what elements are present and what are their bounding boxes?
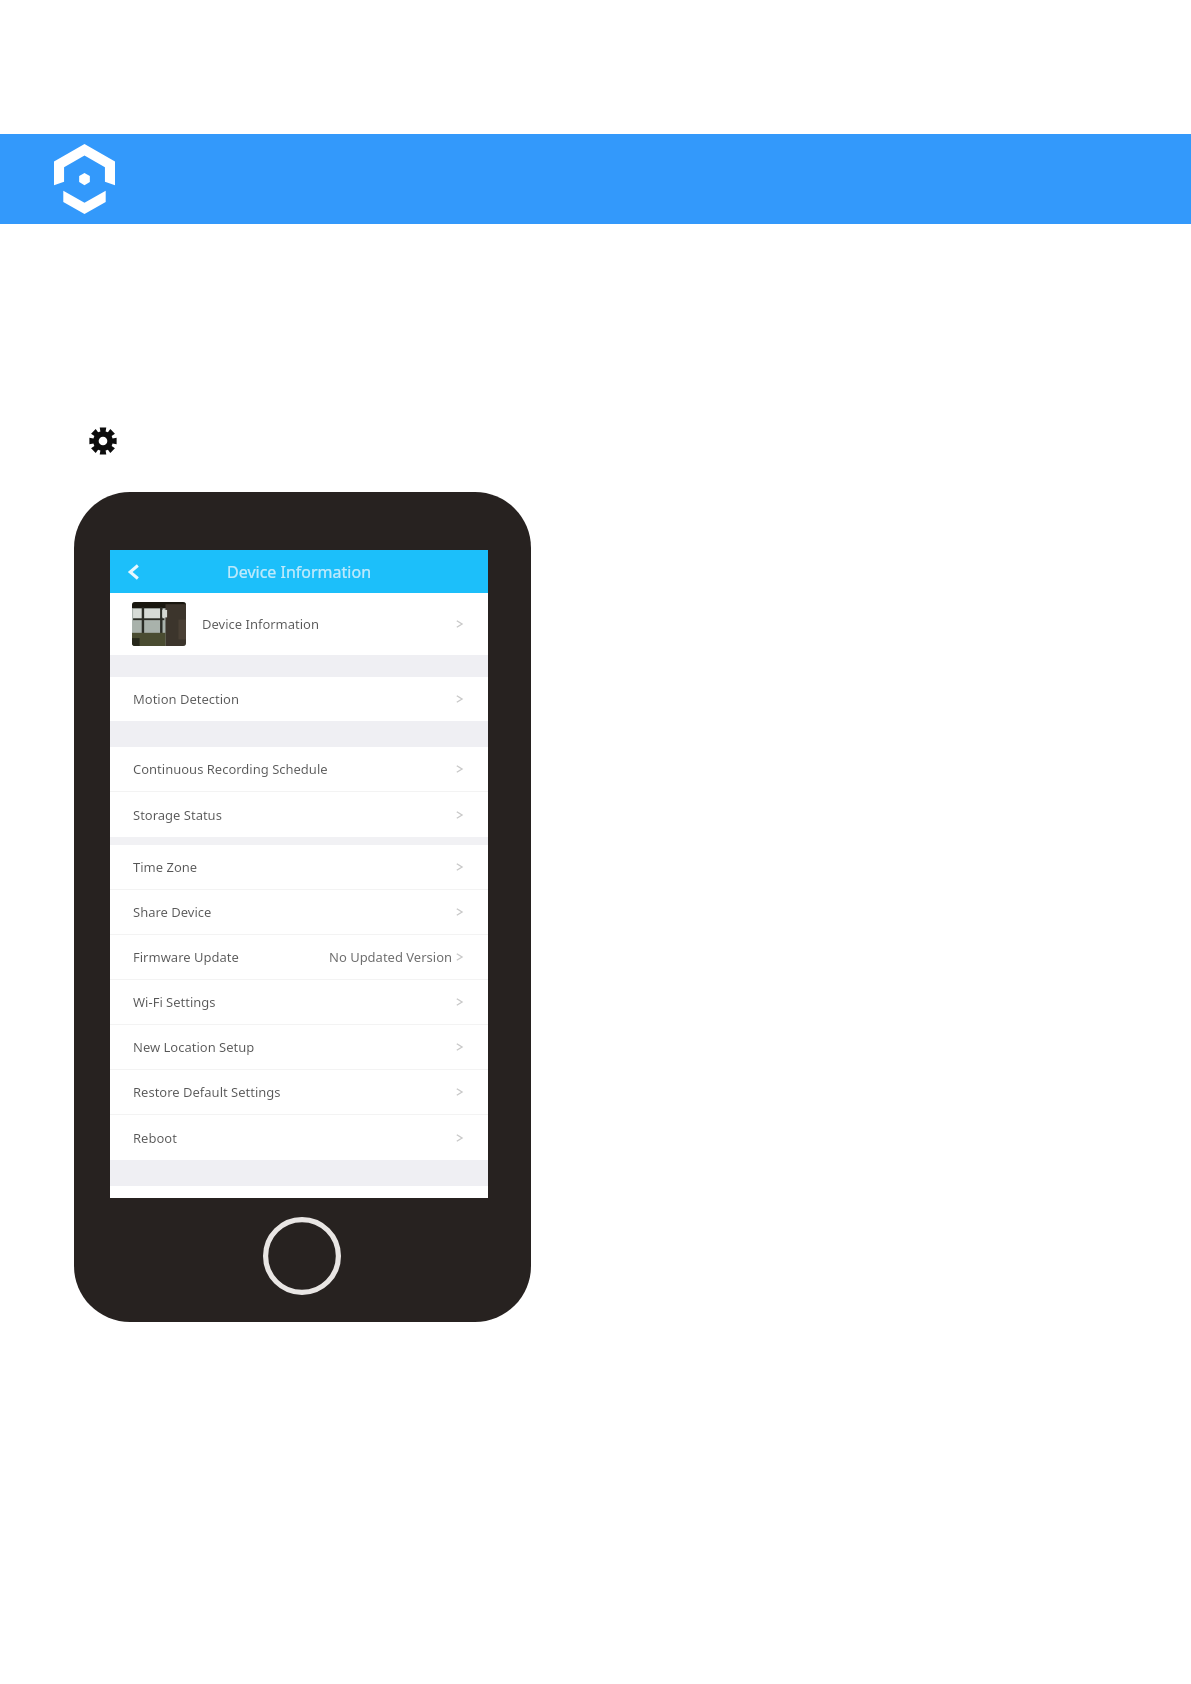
- button[interactable]: Wi-Fi Settings: [110, 980, 488, 1024]
- button[interactable]: Reboot: [110, 1115, 488, 1160]
- button[interactable]: Continuous Recording Schedule: [110, 747, 488, 791]
- staticText: Share Device: [133, 903, 212, 921]
- button[interactable]: Share Device: [110, 890, 488, 934]
- button[interactable]: Storage Status: [110, 792, 488, 837]
- button[interactable]: Device Information: [110, 593, 488, 655]
- button[interactable]: Settings: [89, 427, 117, 455]
- staticText: Firmware Update: [133, 948, 239, 966]
- button[interactable]: Motion Detection: [110, 677, 488, 721]
- staticText: No Updated Version: [329, 948, 453, 966]
- staticText: Continuous Recording Schedule: [133, 760, 328, 778]
- staticText: Motion Detection: [133, 690, 240, 708]
- button[interactable]: Home: [46, 136, 122, 222]
- staticText: Wi-Fi Settings: [133, 993, 216, 1011]
- staticText: Reboot: [133, 1129, 177, 1147]
- staticText: Device Information: [227, 561, 372, 583]
- button[interactable]: Home button: [263, 1217, 341, 1295]
- staticText: Storage Status: [133, 806, 222, 824]
- button[interactable]: New Location Setup: [110, 1025, 488, 1069]
- staticText: Time Zone: [133, 858, 198, 876]
- button[interactable]: Restore Default Settings: [110, 1070, 488, 1114]
- button[interactable]: Back: [122, 560, 146, 584]
- staticText: Device Information: [202, 615, 320, 633]
- staticText: Restore Default Settings: [133, 1083, 281, 1101]
- staticText: New Location Setup: [133, 1038, 255, 1056]
- button[interactable]: Time Zone: [110, 845, 488, 889]
- button[interactable]: Firmware Update: [110, 935, 488, 979]
